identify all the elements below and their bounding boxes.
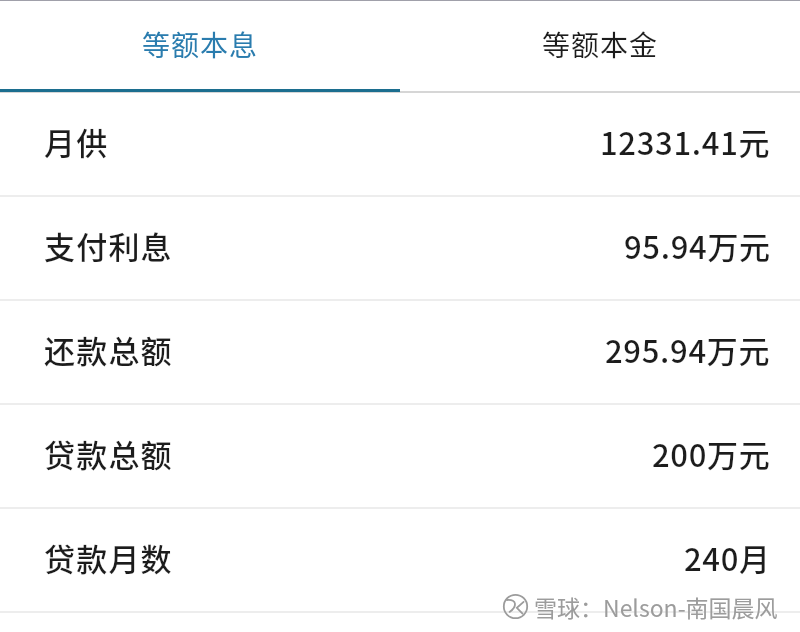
button[interactable]: 贷款月数 — [0, 509, 800, 613]
button[interactable]: 等额本金 — [400, 0, 800, 92]
staticText: 贷款月数 — [44, 535, 173, 580]
staticText: 雪球：Nelson-南国晨风 — [534, 590, 778, 623]
staticText: 200万元 — [652, 431, 771, 476]
staticText: 支付利息 — [44, 223, 173, 268]
other: Xueqiu watermark — [502, 593, 529, 620]
staticText: 贷款总额 — [44, 431, 173, 476]
staticText: 295.94万元 — [605, 327, 771, 372]
staticText: 12331.41元 — [600, 119, 771, 164]
staticText: 还款总额 — [44, 327, 173, 372]
staticText: 等额本息 — [142, 24, 259, 65]
button[interactable]: 等额本息 — [0, 0, 400, 92]
staticText: 240月 — [684, 535, 771, 580]
staticText: 等额本金 — [542, 24, 659, 65]
button[interactable]: 还款总额 — [0, 301, 800, 405]
button[interactable]: 支付利息 — [0, 197, 800, 301]
button[interactable]: 贷款总额 — [0, 405, 800, 509]
staticText: 95.94万元 — [624, 223, 771, 268]
staticText: 月供 — [44, 119, 109, 164]
button[interactable]: 月供 — [0, 93, 800, 197]
